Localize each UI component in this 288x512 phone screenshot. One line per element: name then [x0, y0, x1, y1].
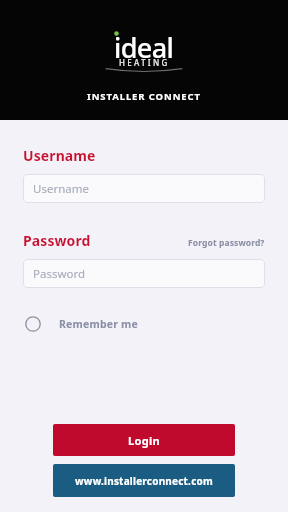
staticText: Remember me	[59, 317, 138, 331]
button[interactable]: www.installerconnect.com	[53, 464, 235, 497]
staticText: Username	[33, 181, 89, 197]
staticText: www.installerconnect.com	[75, 474, 213, 488]
button[interactable]: Login	[53, 424, 235, 456]
staticText: Username	[23, 146, 96, 165]
staticText: Password	[23, 231, 91, 250]
button[interactable]: Remember me	[23, 312, 140, 336]
button[interactable]: Forgot password?	[188, 237, 265, 250]
button[interactable]: Password	[23, 259, 265, 288]
staticText: Login	[128, 433, 160, 448]
staticText: Password	[33, 266, 86, 282]
staticText: HEATING	[119, 57, 170, 68]
button[interactable]: Username	[23, 174, 265, 203]
staticText: Forgot password?	[188, 237, 265, 249]
staticText: ideal	[114, 29, 174, 66]
staticText: INSTALLER CONNECT	[87, 90, 201, 103]
